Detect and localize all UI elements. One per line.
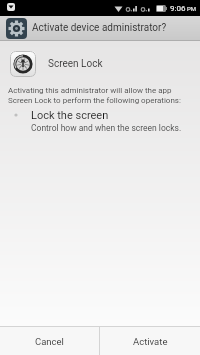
staticText: Activate device administrator? <box>32 22 167 34</box>
staticText: Cancel <box>35 336 64 347</box>
staticText: Lock the screen <box>31 109 109 122</box>
staticText: Activating this administrator will allow… <box>8 86 181 104</box>
button[interactable]: Activate <box>100 327 200 355</box>
button[interactable]: Screen Lock <box>10 51 200 77</box>
button[interactable]: Cancel <box>0 327 99 355</box>
staticText: Activate <box>133 336 168 347</box>
staticText: 9:06 <box>170 4 186 13</box>
staticText: Control how and when the screen locks. <box>31 123 182 133</box>
staticText: Screen Lock <box>48 58 103 70</box>
staticText: PM <box>187 5 197 12</box>
